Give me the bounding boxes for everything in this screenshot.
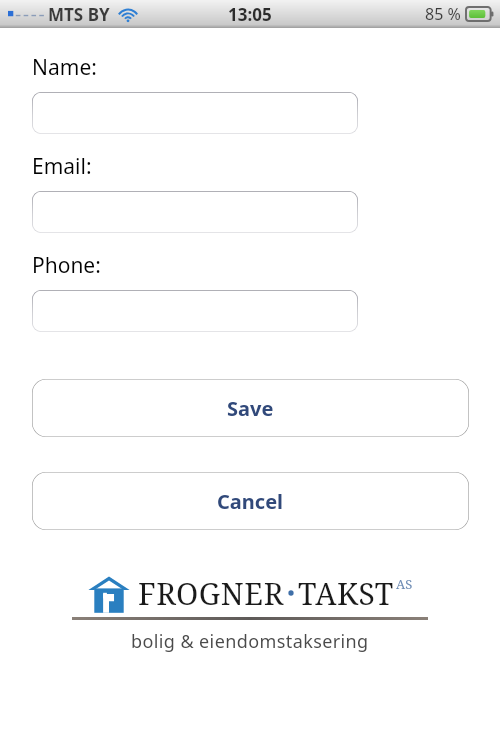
staticText: Save: [227, 395, 274, 422]
staticText: Name:: [32, 53, 97, 82]
staticText: MTS BY: [48, 3, 110, 26]
staticText: Email:: [32, 152, 92, 181]
button[interactable]: [32, 290, 358, 332]
staticText: FROGNER: [138, 573, 284, 614]
button[interactable]: [32, 92, 358, 134]
staticText: Phone:: [32, 251, 101, 280]
staticText: Cancel: [217, 488, 284, 515]
staticText: 13:05: [228, 3, 272, 26]
button[interactable]: [32, 191, 358, 233]
staticText: bolig & eiendomstaksering: [131, 629, 369, 654]
staticText: 85 %: [425, 3, 461, 25]
staticText: AS: [396, 575, 413, 593]
button[interactable]: Save: [32, 379, 469, 437]
staticText: TAKST: [298, 573, 394, 614]
button[interactable]: Cancel: [32, 472, 469, 530]
